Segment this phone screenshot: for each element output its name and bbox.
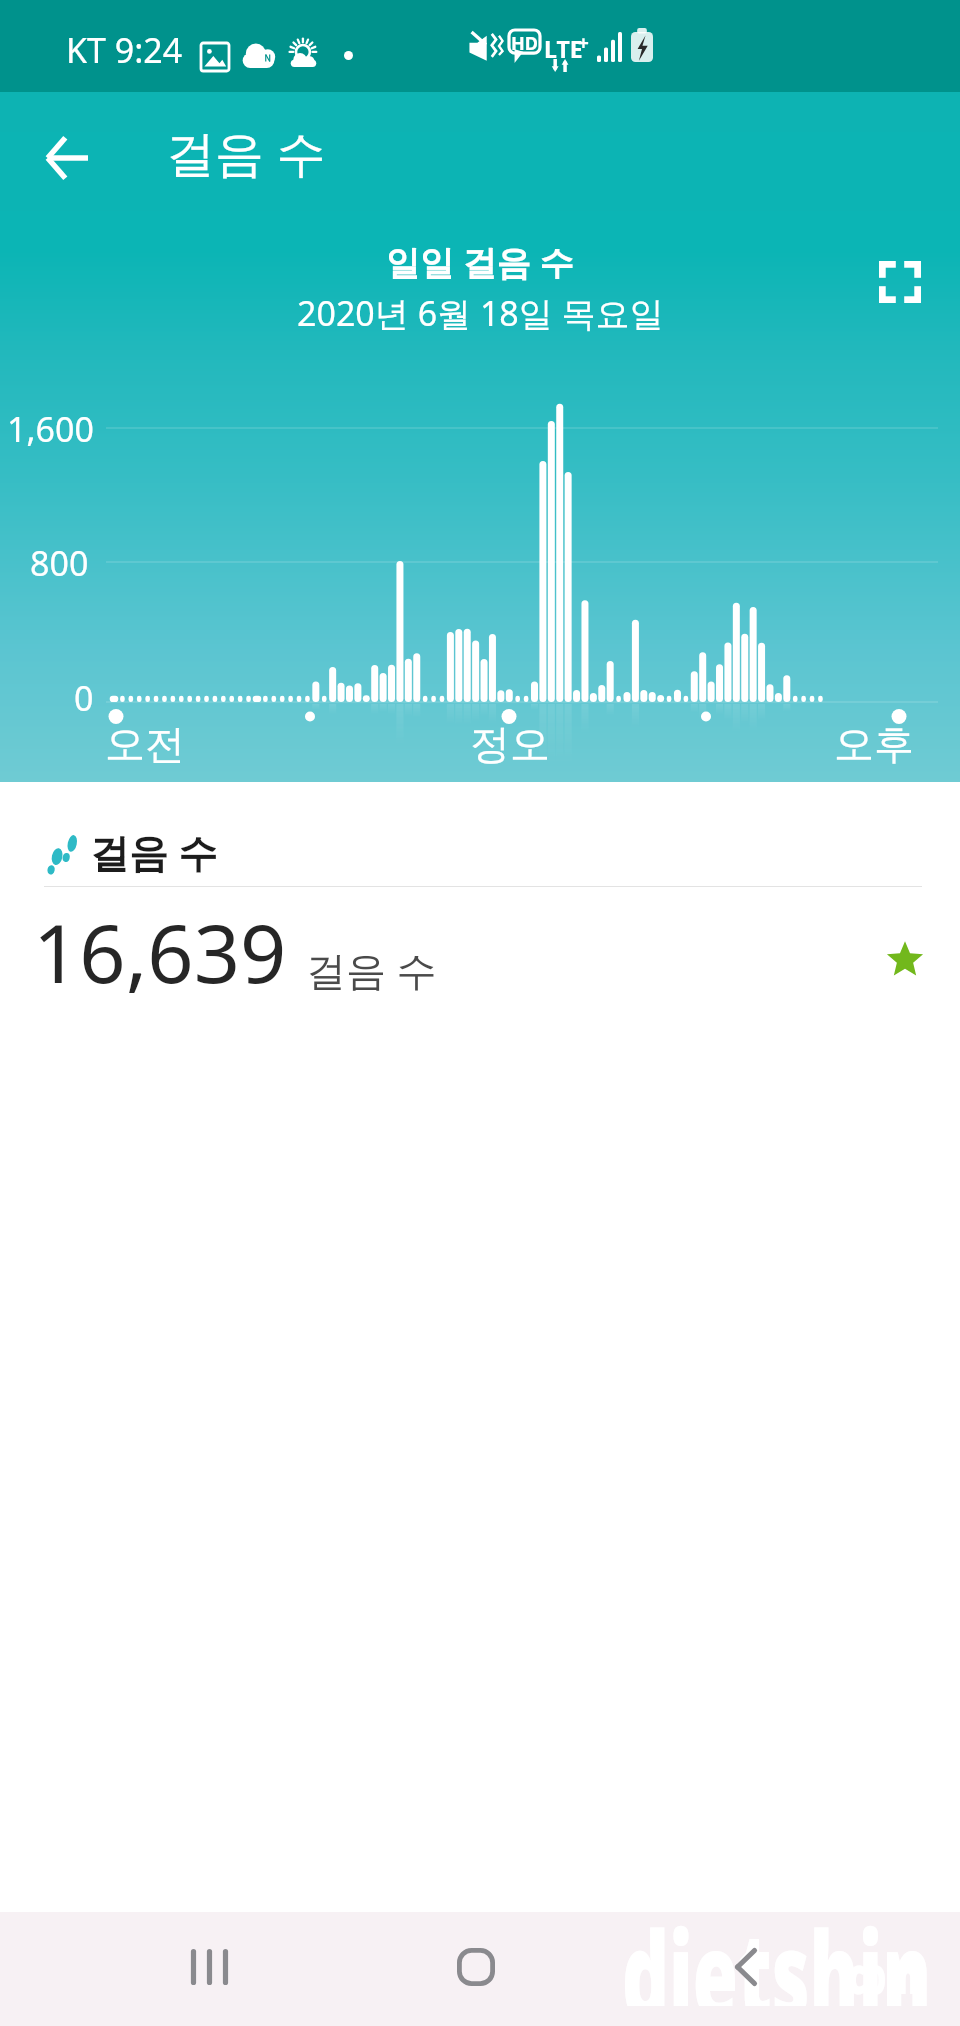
staticText: 걸음 수 — [90, 825, 218, 878]
button[interactable]: Back — [28, 119, 106, 197]
staticText: KT 9:24 — [66, 27, 183, 73]
button[interactable] — [0, 802, 960, 886]
staticText: 800 — [30, 540, 89, 586]
staticText: .com — [839, 1938, 919, 2009]
staticText: 오후 — [834, 719, 914, 769]
staticText: HD — [511, 31, 538, 56]
button[interactable]: Home — [433, 1912, 519, 2026]
staticText: 1,600 — [7, 406, 94, 452]
staticText: dietshin — [622, 1892, 931, 2006]
staticText: + — [578, 30, 589, 56]
staticText: 일일 걸음 수 — [386, 239, 574, 285]
staticText: 걸음 수 — [166, 119, 326, 186]
button[interactable]: Full screen — [864, 246, 936, 318]
staticText: LTE — [544, 33, 583, 64]
button[interactable]: Recent apps — [164, 1912, 250, 2026]
staticText: 오전 — [105, 719, 185, 769]
button[interactable]: Back — [702, 1912, 788, 2026]
staticText: 16,639 — [33, 896, 287, 1006]
button[interactable] — [0, 906, 960, 1016]
staticText: 걸음 수 — [306, 942, 437, 997]
staticText: 정오 — [470, 719, 550, 769]
staticText: 2020년 6월 18일 목요일 — [297, 290, 664, 336]
staticText: 0 — [74, 675, 94, 721]
